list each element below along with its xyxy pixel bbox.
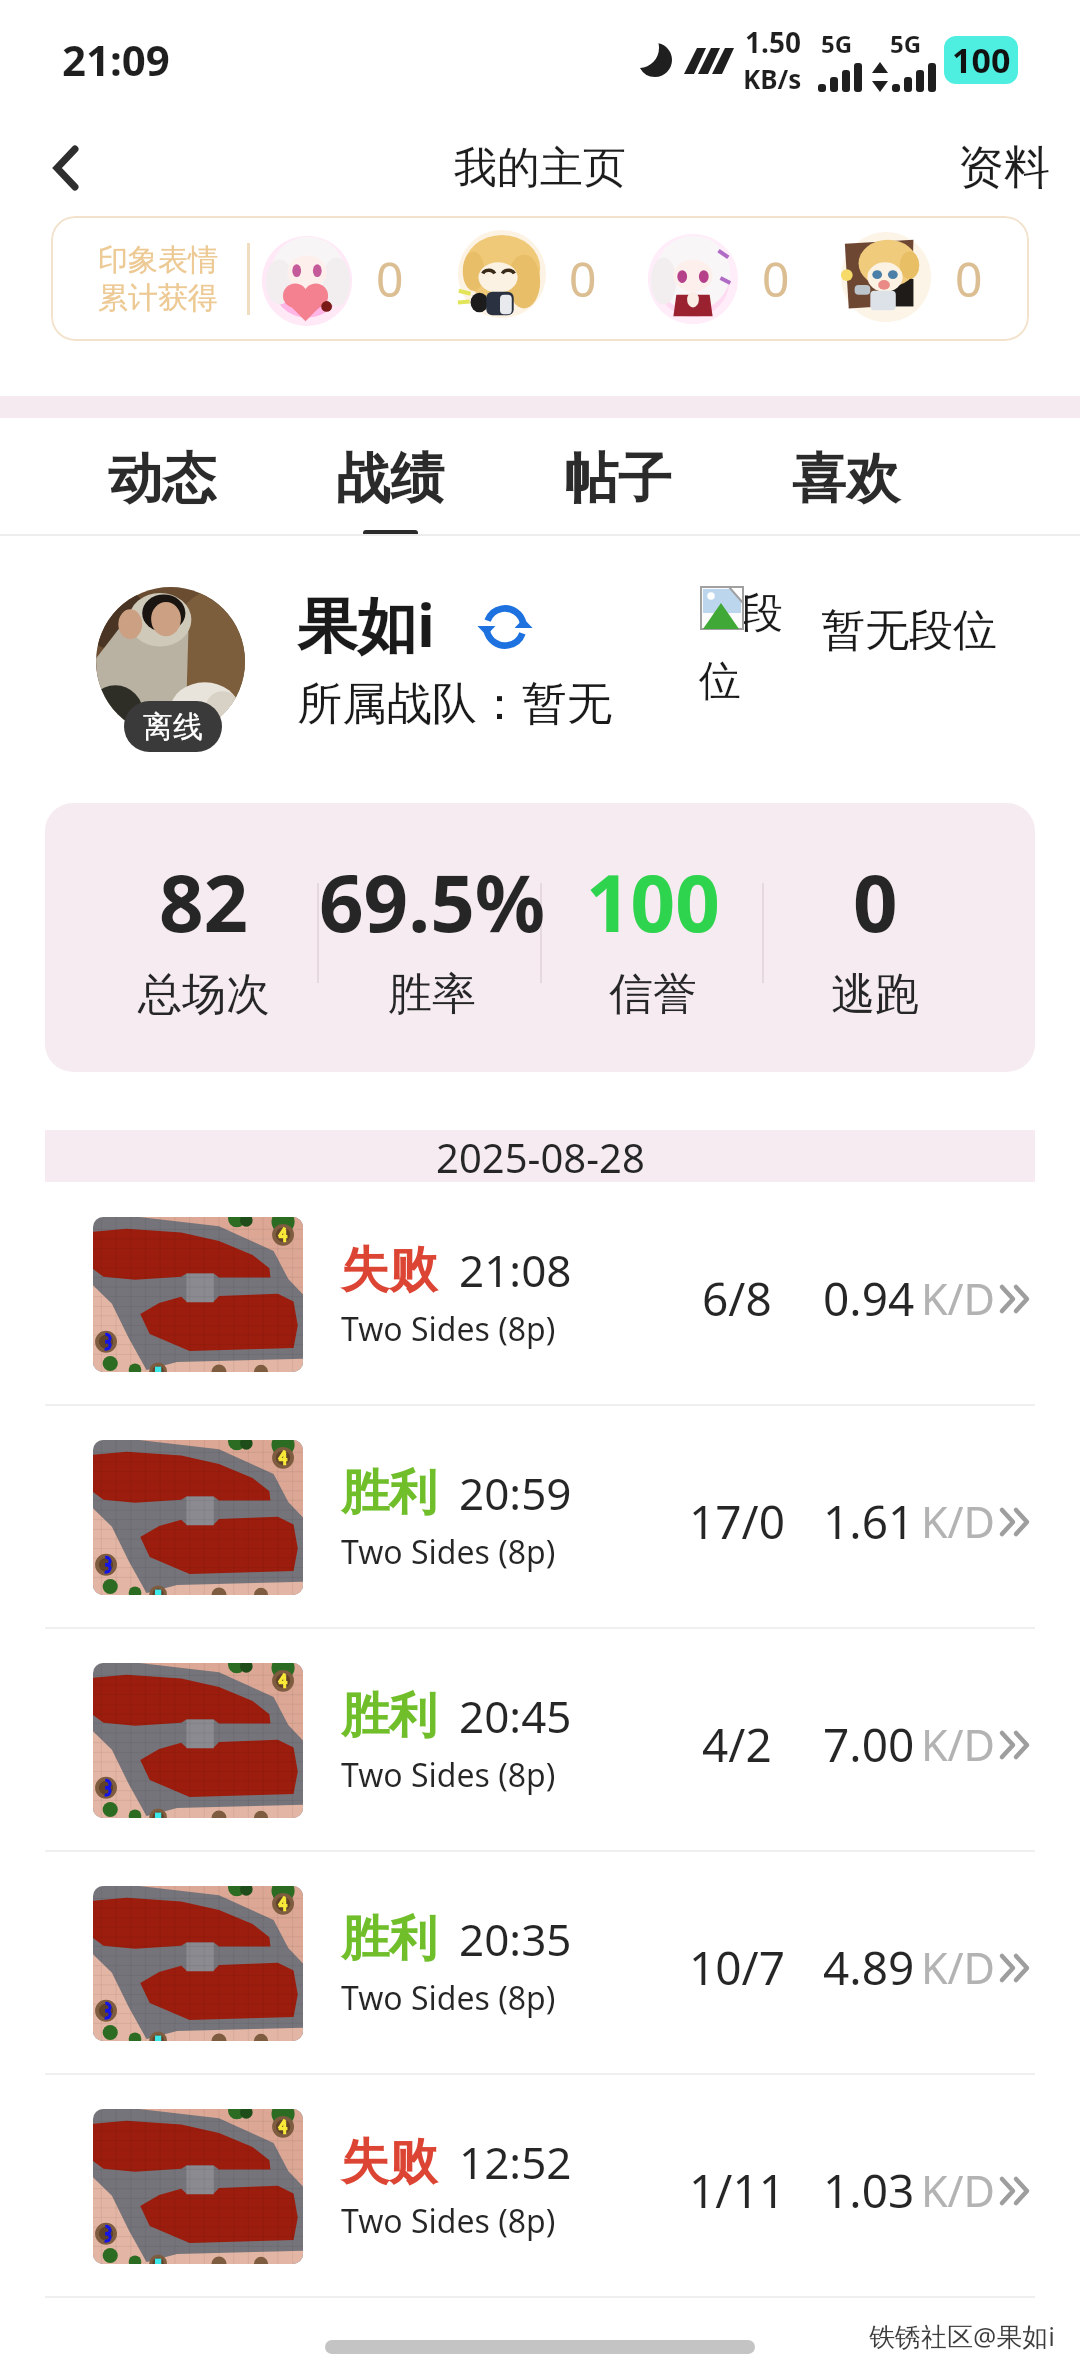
staticText: 1.50 bbox=[745, 23, 801, 61]
staticText: 累计获得 bbox=[98, 279, 218, 317]
button[interactable]: Reaction sticker bbox=[644, 216, 837, 341]
button[interactable]: 失败 bbox=[0, 1183, 1080, 1406]
button[interactable]: 胜利 bbox=[0, 1629, 1080, 1852]
button[interactable]: 印象表情 bbox=[51, 216, 1029, 341]
staticText: KB/s bbox=[743, 61, 802, 96]
staticText: 胜利 bbox=[341, 1909, 437, 1969]
staticText: 总场次 bbox=[138, 967, 270, 1022]
staticText: 0.94 bbox=[823, 1267, 915, 1330]
staticText: 暂无段位 bbox=[821, 603, 997, 658]
staticText: Two Sides (8p) bbox=[341, 1753, 556, 1797]
staticText: 喜欢 bbox=[792, 445, 900, 513]
staticText: K/D bbox=[921, 1938, 996, 1997]
staticText: 0 bbox=[853, 849, 898, 955]
staticText: 失败 bbox=[341, 2132, 437, 2192]
staticText: 果如i bbox=[297, 583, 435, 665]
staticText: Two Sides (8p) bbox=[341, 1307, 556, 1351]
staticText: 失败 bbox=[341, 1240, 437, 1300]
staticText: 胜率 bbox=[388, 967, 476, 1022]
button[interactable]: Reaction sticker bbox=[258, 216, 451, 341]
staticText: Two Sides (8p) bbox=[341, 1530, 556, 1574]
staticText: 战绩 bbox=[336, 445, 444, 513]
staticText: 20:35 bbox=[459, 1909, 572, 1969]
staticText: 20:59 bbox=[459, 1463, 572, 1523]
button[interactable]: 动态 bbox=[56, 418, 268, 536]
staticText: 所属战队：暂无 bbox=[297, 676, 612, 733]
staticText: 17/0 bbox=[689, 1490, 786, 1553]
staticText: Two Sides (8p) bbox=[341, 2199, 556, 2243]
staticText: 0 bbox=[955, 246, 983, 311]
staticText: 12:52 bbox=[459, 2132, 572, 2192]
button[interactable]: 胜利 bbox=[0, 1406, 1080, 1629]
staticText: K/D bbox=[921, 1492, 996, 1551]
staticText: 0 bbox=[762, 246, 790, 311]
staticText: 胜利 bbox=[341, 1686, 437, 1746]
staticText: 印象表情 bbox=[98, 241, 218, 279]
staticText: 20:45 bbox=[459, 1686, 572, 1746]
staticText: 动态 bbox=[108, 445, 216, 513]
staticText: 1.61 bbox=[823, 1490, 915, 1553]
staticText: 21:09 bbox=[62, 31, 170, 88]
staticText: 82 bbox=[159, 849, 249, 955]
staticText: 胜利 bbox=[341, 1463, 437, 1523]
button[interactable]: Refresh bbox=[473, 595, 537, 659]
staticText: 0 bbox=[569, 246, 597, 311]
staticText: 4.89 bbox=[823, 1936, 915, 1999]
button[interactable]: 战绩 bbox=[284, 418, 496, 536]
button[interactable]: 喜欢 bbox=[740, 418, 952, 536]
button[interactable]: 失败 bbox=[0, 2075, 1080, 2298]
staticText: 2025-08-28 bbox=[436, 1130, 645, 1182]
staticText: 69.5% bbox=[319, 849, 546, 955]
staticText: 逃跑 bbox=[831, 967, 919, 1022]
staticText: K/D bbox=[921, 1269, 996, 1328]
staticText: 5G bbox=[890, 27, 922, 60]
staticText: 帖子 bbox=[564, 445, 672, 513]
staticText: 5G bbox=[821, 27, 853, 60]
staticText: 7.00 bbox=[823, 1713, 915, 1776]
staticText: 0 bbox=[376, 246, 404, 311]
button[interactable]: 帖子 bbox=[512, 418, 724, 536]
staticText: K/D bbox=[921, 2161, 996, 2220]
button[interactable]: 胜利 bbox=[0, 1852, 1080, 2075]
button[interactable]: Reaction sticker bbox=[837, 216, 1029, 341]
button[interactable]: Reaction sticker bbox=[451, 216, 644, 341]
staticText: 21:08 bbox=[459, 1240, 572, 1300]
staticText: 1.03 bbox=[823, 2159, 915, 2222]
button[interactable]: Back bbox=[30, 132, 102, 204]
staticText: 6/8 bbox=[702, 1267, 772, 1330]
staticText: 离线 bbox=[143, 708, 203, 746]
staticText: 10/7 bbox=[689, 1936, 786, 1999]
staticText: 100 bbox=[586, 849, 720, 955]
button[interactable]: 资料 bbox=[928, 120, 1080, 216]
staticText: 1/11 bbox=[689, 2159, 786, 2222]
staticText: 我的主页 bbox=[454, 141, 626, 195]
staticText: 段位 bbox=[699, 582, 789, 707]
staticText: Two Sides (8p) bbox=[341, 1976, 556, 2020]
staticText: 信誉 bbox=[609, 967, 697, 1022]
staticText: 铁锈社区@果如i bbox=[869, 2318, 1056, 2354]
staticText: K/D bbox=[921, 1715, 996, 1774]
staticText: 4/2 bbox=[702, 1713, 772, 1776]
staticText: 资料 bbox=[958, 139, 1050, 197]
button[interactable]: 离线 bbox=[96, 587, 245, 753]
staticText: 100 bbox=[952, 37, 1011, 83]
